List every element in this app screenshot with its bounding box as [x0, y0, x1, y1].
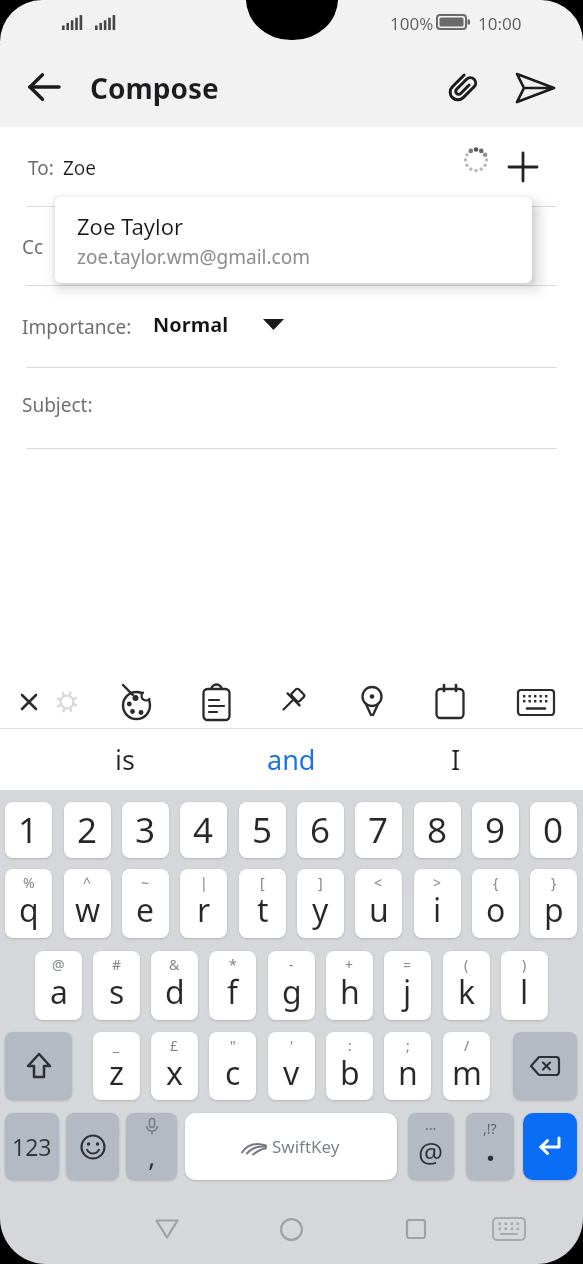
button[interactable]: ,!?: [466, 1113, 514, 1180]
button[interactable]: Zoe Taylor: [55, 197, 532, 283]
button[interactable]: 4: [180, 802, 227, 858]
staticText: l: [520, 970, 529, 1014]
staticText: Zoe: [63, 155, 97, 181]
button[interactable]: %: [5, 869, 52, 938]
staticText: _: [113, 1036, 120, 1055]
button[interactable]: =: [384, 951, 431, 1020]
staticText: f: [227, 970, 239, 1014]
button[interactable]: ): [501, 951, 548, 1020]
button[interactable]: [280, 1218, 303, 1241]
button[interactable]: [0, 207, 583, 285]
button[interactable]: [443, 69, 481, 107]
button[interactable]: [62, 12, 120, 31]
button[interactable]: ...: [408, 1113, 454, 1180]
staticText: &: [169, 955, 180, 974]
staticText: ^: [83, 873, 92, 892]
staticText: zoe.taylor.wm@gmail.com: [77, 244, 310, 270]
button[interactable]: /: [443, 1032, 490, 1100]
button[interactable]: SwiftKey: [185, 1113, 397, 1180]
button[interactable]: [29, 72, 61, 102]
button[interactable]: [5, 1032, 72, 1100]
button[interactable]: ': [268, 1032, 315, 1100]
staticText: <: [374, 873, 383, 892]
staticText: s: [109, 970, 125, 1014]
button[interactable]: *: [209, 951, 256, 1020]
button[interactable]: 0: [530, 802, 577, 858]
button[interactable]: (: [443, 951, 490, 1020]
button[interactable]: ~: [122, 869, 169, 938]
staticText: z: [109, 1051, 125, 1095]
button[interactable]: _: [93, 1032, 140, 1100]
button[interactable]: [435, 684, 465, 720]
button[interactable]: [492, 1217, 526, 1241]
button[interactable]: [406, 1219, 426, 1239]
button[interactable]: ;: [384, 1032, 431, 1100]
button[interactable]: 8: [414, 802, 461, 858]
button[interactable]: >: [414, 869, 461, 938]
button[interactable]: [514, 70, 558, 106]
staticText: u: [369, 888, 389, 932]
button[interactable]: 5: [239, 802, 286, 858]
staticText: is: [115, 741, 135, 778]
staticText: 1: [18, 806, 39, 854]
staticText: £: [170, 1036, 179, 1055]
button[interactable]: 1: [5, 802, 52, 858]
button[interactable]: #: [93, 951, 140, 1020]
staticText: (: [464, 955, 469, 974]
button[interactable]: <: [355, 869, 402, 938]
button[interactable]: -: [268, 951, 315, 1020]
button[interactable]: £: [151, 1032, 198, 1100]
button[interactable]: @: [35, 951, 82, 1020]
staticText: r: [197, 888, 211, 932]
button[interactable]: [0, 127, 583, 206]
staticText: t: [257, 888, 269, 932]
button[interactable]: [56, 691, 78, 713]
staticText: =: [403, 955, 412, 974]
button[interactable]: {: [472, 869, 519, 938]
button[interactable]: ": [209, 1032, 256, 1100]
button[interactable]: and: [226, 729, 356, 789]
staticText: n: [398, 1051, 418, 1095]
button[interactable]: [: [239, 869, 286, 938]
button[interactable]: I: [391, 729, 521, 789]
staticText: Cc: [22, 234, 44, 260]
button[interactable]: 123: [5, 1113, 59, 1180]
staticText: ): [522, 955, 527, 974]
button[interactable]: [66, 1113, 119, 1180]
button[interactable]: 2: [64, 802, 111, 858]
staticText: w: [75, 888, 101, 932]
button[interactable]: Normal: [145, 305, 295, 345]
button[interactable]: 6: [297, 802, 344, 858]
button[interactable]: ]: [297, 869, 344, 938]
staticText: %: [23, 873, 35, 892]
button[interactable]: [463, 147, 489, 173]
button[interactable]: :: [326, 1032, 373, 1100]
button[interactable]: [437, 15, 473, 30]
button[interactable]: [119, 683, 157, 721]
staticText: 6: [310, 806, 331, 854]
button[interactable]: [517, 689, 555, 716]
button[interactable]: [202, 684, 232, 722]
staticText: 7: [368, 806, 389, 854]
button[interactable]: [0, 368, 583, 448]
button[interactable]: &: [151, 951, 198, 1020]
button[interactable]: [357, 685, 387, 719]
staticText: g: [282, 970, 302, 1014]
button[interactable]: [21, 694, 37, 710]
button[interactable]: +: [326, 951, 373, 1020]
button[interactable]: [523, 1113, 577, 1180]
button[interactable]: ^: [64, 869, 111, 938]
button[interactable]: }: [530, 869, 577, 938]
button[interactable]: ,: [126, 1113, 177, 1180]
button[interactable]: |: [180, 869, 227, 938]
button[interactable]: 3: [122, 802, 169, 858]
button[interactable]: 7: [355, 802, 402, 858]
button[interactable]: is: [60, 729, 190, 789]
button[interactable]: [155, 1219, 179, 1239]
button[interactable]: [508, 152, 538, 182]
staticText: Importance:: [22, 314, 132, 340]
button[interactable]: [276, 685, 308, 717]
button[interactable]: [513, 1032, 577, 1100]
staticText: m: [452, 1051, 482, 1095]
button[interactable]: 9: [472, 802, 519, 858]
